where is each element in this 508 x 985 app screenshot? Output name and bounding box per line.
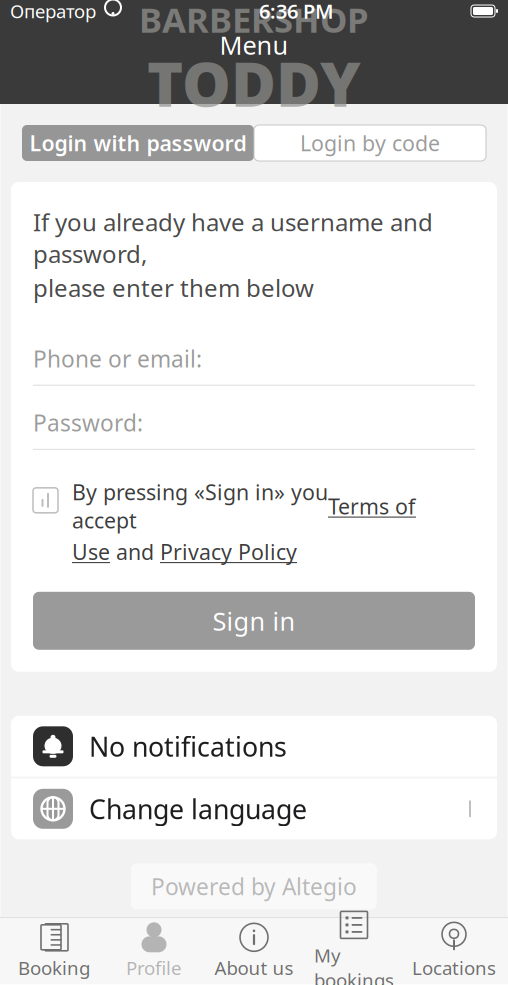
button[interactable]: Profile: [104, 920, 204, 982]
staticText: Terms of: [328, 492, 415, 520]
button[interactable]: Locations: [404, 920, 504, 982]
staticText: Use: [72, 537, 110, 566]
button[interactable]: Login by code: [254, 125, 486, 161]
staticText: Login by code: [300, 129, 440, 157]
staticText: Phone or email:: [33, 344, 202, 374]
button[interactable]: About us: [204, 920, 304, 982]
staticText: Change language: [89, 791, 307, 826]
staticText: Booking: [18, 955, 90, 980]
staticText: 6:36 PM: [259, 0, 334, 24]
button[interactable]: Sign in: [33, 592, 475, 650]
button[interactable]: Booking: [4, 920, 104, 982]
staticText: and: [110, 537, 160, 566]
button[interactable]: My bookings: [304, 920, 404, 982]
button[interactable]: By pressing «Sign in» you accept: [33, 478, 475, 566]
staticText: By pressing «Sign in» you accept: [72, 478, 328, 534]
staticText: Password:: [33, 408, 143, 438]
staticText: Locations: [412, 955, 496, 980]
staticText: TODDY: [147, 42, 361, 124]
staticText: please enter them below: [33, 272, 314, 304]
staticText: Login with password: [29, 129, 246, 157]
staticText: Menu: [219, 28, 288, 62]
staticText: Sign in: [212, 604, 295, 638]
button[interactable]: Login with password: [22, 125, 254, 161]
staticText: No notifications: [89, 729, 287, 764]
staticText: About us: [214, 955, 293, 980]
button[interactable]: No notifications: [11, 716, 497, 777]
staticText: BARBERSHOP: [139, 0, 369, 42]
staticText: Privacy Policy: [160, 537, 297, 566]
staticText: Оператор: [10, 0, 96, 23]
button[interactable]: Change language: [11, 778, 497, 839]
staticText: My bookings: [314, 943, 394, 985]
staticText: If you already have a username and passw…: [33, 206, 433, 270]
staticText: Profile: [126, 955, 182, 980]
staticText: Powered by Altegio: [151, 871, 357, 901]
